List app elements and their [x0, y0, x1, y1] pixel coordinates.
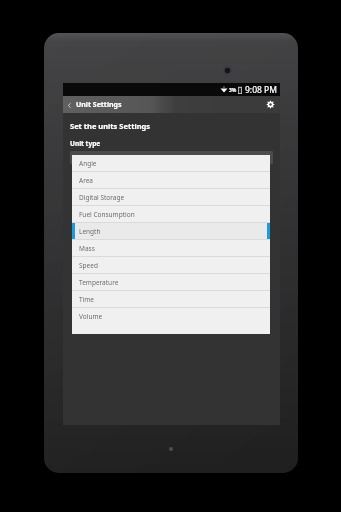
button[interactable]: Back — [63, 100, 127, 110]
staticText: Speed — [79, 261, 98, 270]
button[interactable]: Volume — [72, 308, 270, 325]
staticText: Volume — [79, 312, 103, 321]
staticText: Length — [79, 227, 101, 236]
staticText: Mass — [79, 244, 95, 253]
staticText: Unit type — [70, 139, 101, 148]
staticText: Unit Settings — [76, 100, 122, 110]
other: Back — [66, 102, 73, 109]
button[interactable]: Fuel Consumption — [72, 206, 270, 223]
staticText: Set the units Settings — [70, 121, 151, 131]
staticText: Temperature — [79, 278, 119, 287]
button[interactable]: Speed — [72, 257, 270, 274]
staticText: 3% — [229, 87, 237, 94]
staticText: Length — [75, 153, 97, 162]
button[interactable]: Temperature — [72, 274, 270, 291]
button[interactable]: Angle — [72, 155, 270, 172]
staticText: Digital Storage — [79, 193, 125, 202]
button[interactable]: Area — [72, 172, 270, 189]
button[interactable]: Digital Storage — [72, 189, 270, 206]
button[interactable]: Mass — [72, 240, 270, 257]
button[interactable]: Settings — [261, 100, 280, 109]
staticText: Angle — [79, 159, 97, 168]
staticText: 9:08 PM — [245, 84, 277, 96]
button[interactable]: Time — [72, 291, 270, 308]
staticText: Area — [79, 176, 94, 185]
button[interactable]: Length — [72, 223, 270, 240]
staticText: Fuel Consumption — [79, 210, 135, 219]
staticText: Time — [79, 295, 95, 304]
button[interactable]: Length — [70, 151, 273, 164]
